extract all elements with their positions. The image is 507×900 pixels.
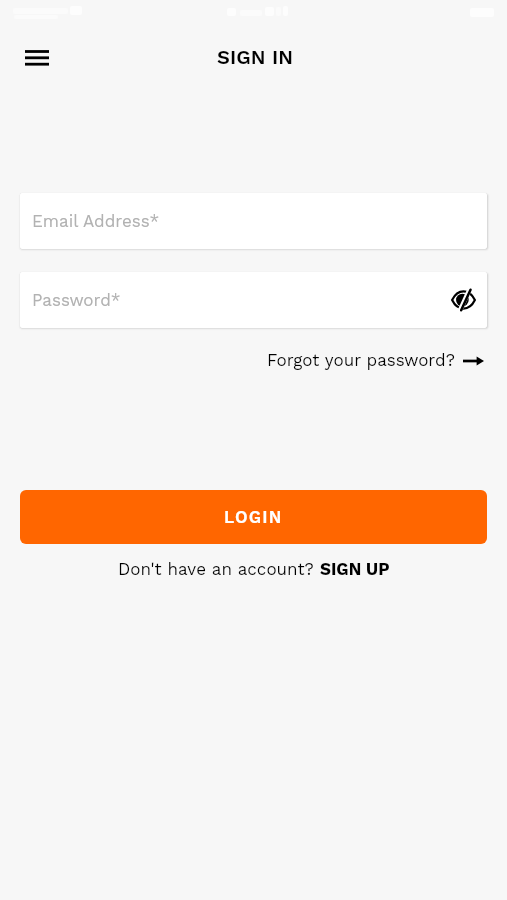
button[interactable]: Email Address* [20, 193, 487, 249]
staticText: LOGIN [224, 507, 283, 527]
staticText: SIGN UP [320, 559, 390, 579]
button[interactable]: Forgot your password? [267, 347, 484, 373]
button[interactable]: Password* [20, 272, 487, 328]
staticText: SIGN IN [217, 45, 294, 68]
staticText: Forgot your password? [267, 350, 455, 370]
button[interactable]: Menu [13, 34, 61, 82]
button[interactable]: Show password [447, 284, 479, 316]
staticText: Don't have an account? [118, 559, 320, 579]
staticText: Email Address* [32, 211, 160, 231]
button[interactable]: Don't have an account? [118, 559, 390, 579]
staticText: Password* [32, 290, 121, 310]
button[interactable]: LOGIN [20, 490, 487, 544]
